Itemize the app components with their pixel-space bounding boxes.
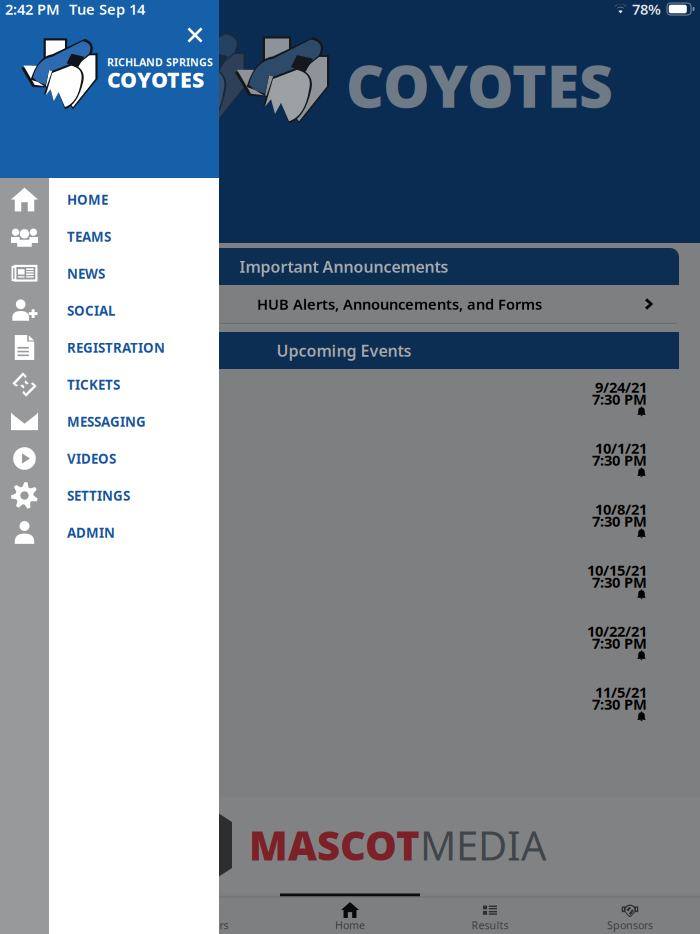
staticText: ADMIN [67,524,115,541]
button[interactable]: 9/24/21 [0,369,700,430]
staticText: Tue Sep 14 [69,0,145,19]
staticText: NEWS [67,265,105,282]
staticText: COYOTES [346,46,613,124]
staticText: 10/15/21 [587,560,647,580]
staticText: HOME [67,191,108,208]
staticText: Important Announcements [239,256,448,277]
button[interactable]: 10/1/21 [0,430,700,491]
button[interactable]: HUB Alerts, Announcements, and Forms [9,285,679,323]
staticText: 7:30 PM [592,389,647,409]
staticText: 7:30 PM [592,450,647,470]
staticText: 2:42 PM [5,0,60,19]
button[interactable]: Sponsors [560,897,700,934]
staticText: REGISTRATION [67,339,165,356]
button[interactable]: SETTINGS [0,477,219,514]
button[interactable]: Home [280,897,420,934]
staticText: 78% [632,0,661,19]
staticText: Upcoming Events [276,340,411,361]
button[interactable]: SOCIAL [0,292,219,329]
staticText: HUB Alerts, Announcements, and Forms [257,294,542,314]
staticText: 9/24/21 [595,377,647,397]
button[interactable]: Close menu [176,17,214,53]
button[interactable]: MESSAGING [0,403,219,440]
button[interactable]: 10/15/21 [0,552,700,613]
button[interactable]: 10/22/21 [0,613,700,674]
staticText: 11/5/21 [595,682,647,702]
staticText: MESSAGING [67,413,146,430]
staticText: Home [335,918,365,932]
staticText: SETTINGS [67,487,130,504]
staticText: COYOTES [107,65,204,94]
button[interactable]: Rosters [140,897,280,934]
staticText: 10/1/21 [595,438,647,458]
button[interactable]: 10/8/21 [0,491,700,552]
staticText: TICKETS [67,376,120,393]
staticText: MEDIA [420,818,547,871]
staticText: Sponsors [607,918,653,932]
button[interactable]: NEWS [0,255,219,292]
button[interactable]: Results [420,897,560,934]
button[interactable]: Scores [0,897,140,934]
button[interactable]: TEAMS [0,218,219,255]
button[interactable]: ADMIN [0,514,219,551]
button[interactable]: VIDEOS [0,440,219,477]
staticText: RICHLAND SPRINGS [107,55,213,69]
staticText: 10/22/21 [587,621,647,641]
staticText: Rosters [191,918,228,932]
button[interactable]: 11/5/21 [0,674,700,735]
staticText: MASCOT [249,818,420,871]
button[interactable]: HOME [0,181,219,218]
staticText: 7:30 PM [592,633,647,653]
staticText: Results [471,918,508,932]
staticText: SOCIAL [67,302,115,319]
button[interactable]: REGISTRATION [0,329,219,366]
staticText: TEAMS [67,228,111,245]
staticText: 7:30 PM [592,511,647,531]
staticText: 10/8/21 [595,499,647,519]
button[interactable]: TICKETS [0,366,219,403]
staticText: VIDEOS [67,450,116,467]
staticText: 7:30 PM [592,694,647,714]
staticText: 7:30 PM [592,572,647,592]
